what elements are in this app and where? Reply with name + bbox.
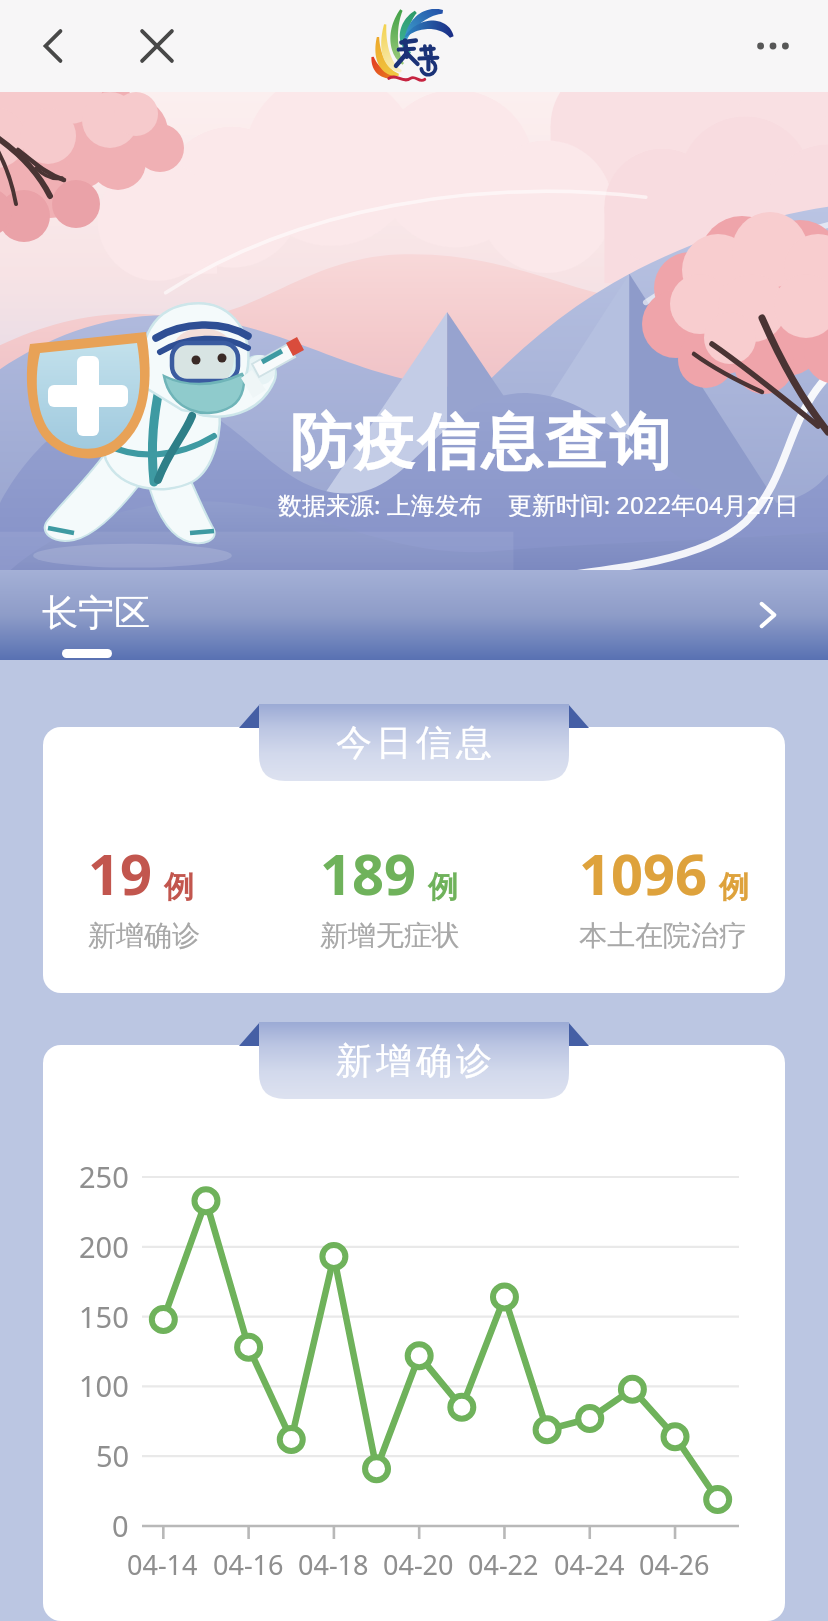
staticText: 1096 (579, 835, 708, 911)
staticText: 本土在院治疗 (579, 918, 747, 953)
button[interactable]: 长宁区 (0, 570, 828, 660)
staticText: 例 (428, 868, 458, 906)
staticText: 长宁区 (42, 590, 150, 635)
staticText: 189 (320, 835, 417, 911)
staticText: 防疫信息查询 (288, 404, 672, 481)
staticText: 0 (112, 1506, 129, 1545)
staticText: 04-26 (639, 1546, 710, 1583)
button[interactable]: Back (22, 15, 84, 77)
staticText: 150 (79, 1297, 129, 1336)
staticText: 04-16 (213, 1546, 284, 1583)
button[interactable]: Close (126, 15, 188, 77)
other: Select district (748, 595, 788, 635)
staticText: 100 (79, 1366, 129, 1405)
staticText: 新增确诊 (88, 918, 200, 953)
other: Changning logo (369, 1, 459, 91)
staticText: 例 (164, 868, 194, 906)
staticText: 新增确诊 (334, 1038, 494, 1083)
staticText: 今日信息 (334, 720, 494, 765)
staticText: 19 (88, 835, 153, 911)
staticText: 250 (79, 1157, 129, 1196)
staticText: 数据来源: 上海发布 更新时间: 2022年04月27日 (278, 488, 799, 521)
staticText: 04-20 (383, 1546, 454, 1583)
staticText: 04-18 (298, 1546, 369, 1583)
staticText: 例 (719, 868, 749, 906)
staticText: 新增无症状 (320, 918, 460, 953)
staticText: 50 (96, 1436, 130, 1475)
staticText: 04-24 (554, 1546, 625, 1583)
staticText: 04-14 (127, 1546, 198, 1583)
button[interactable]: More options (742, 15, 804, 77)
staticText: 04-22 (468, 1546, 539, 1583)
staticText: 200 (79, 1227, 129, 1266)
